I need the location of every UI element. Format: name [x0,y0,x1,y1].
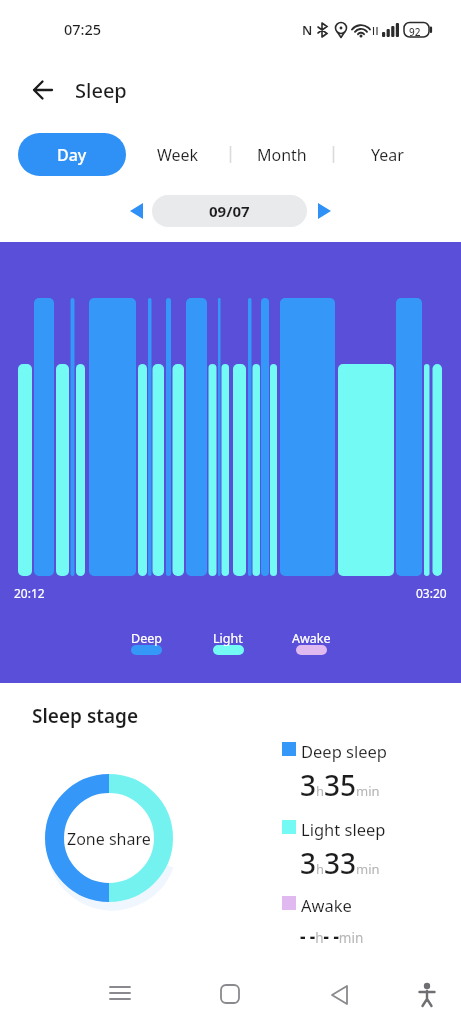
staticText: 3h33min [300,844,380,882]
staticText: Zone share [67,828,151,850]
staticText: Deep [131,630,162,647]
staticText: Sleep [75,77,127,104]
staticText: N [302,21,313,39]
staticText: Light sleep [301,818,386,840]
staticText: Year [371,144,404,166]
staticText: Deep sleep [301,740,388,762]
staticText: 92 [409,25,421,39]
staticText: Day [57,144,87,166]
button[interactable] [123,195,151,227]
staticText: Week [157,144,199,166]
staticText: 09/07 [209,201,250,221]
button[interactable] [410,978,444,1012]
staticText: Awake [301,894,352,916]
button[interactable]: 09/07 [152,195,307,227]
button[interactable]: Day [18,133,126,176]
button[interactable]: Year [350,133,424,176]
staticText: Month [257,144,307,166]
staticText: - -h- -min [300,925,364,948]
button[interactable] [103,978,137,1012]
button[interactable] [310,195,338,227]
button[interactable] [323,978,357,1012]
staticText: Awake [292,630,331,647]
staticText: 20:12 [14,585,45,601]
staticText: Sleep stage [32,703,139,729]
button[interactable]: Month [244,133,320,176]
staticText: Light [213,630,243,647]
staticText: 3h35min [300,766,380,804]
button[interactable]: Week [140,133,216,176]
staticText: 07:25 [64,19,102,39]
button[interactable] [213,978,247,1012]
button[interactable] [24,78,60,104]
staticText: 03:20 [416,585,447,601]
